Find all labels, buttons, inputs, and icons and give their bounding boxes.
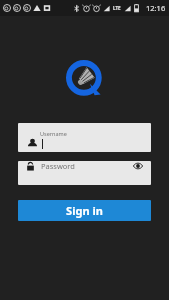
staticText: LTE bbox=[113, 5, 121, 11]
staticText: Password bbox=[41, 161, 75, 171]
other: Show password bbox=[133, 161, 143, 171]
other: Username bbox=[27, 138, 38, 149]
other: Password bbox=[26, 162, 35, 171]
button[interactable]: Username bbox=[18, 123, 151, 152]
staticText: Username bbox=[40, 130, 67, 137]
staticText: Sign in bbox=[66, 203, 103, 218]
button[interactable]: Password bbox=[18, 161, 151, 185]
staticText: 12:16 bbox=[146, 3, 166, 13]
button[interactable]: Sign in bbox=[18, 200, 151, 221]
